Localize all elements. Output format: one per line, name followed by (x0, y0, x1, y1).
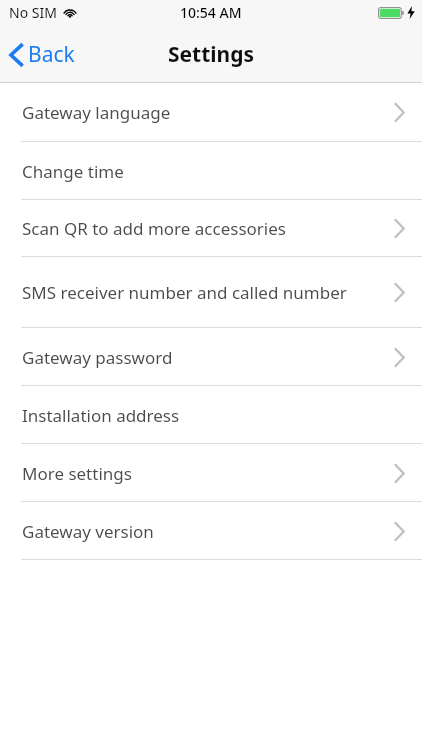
staticText: 10:54 AM (180, 3, 242, 22)
staticText: Gateway password (22, 346, 173, 369)
button[interactable]: Back (0, 34, 87, 75)
staticText: SMS receiver number and called number (22, 281, 347, 304)
button[interactable]: Installation address (0, 386, 422, 444)
button[interactable]: More settings (0, 444, 422, 502)
staticText: No SIM (9, 3, 57, 22)
staticText: Gateway language (22, 101, 171, 124)
staticText: Gateway version (22, 520, 154, 543)
staticText: Scan QR to add more accessories (22, 217, 286, 240)
button[interactable]: Change time (0, 142, 422, 200)
staticText: Installation address (22, 404, 180, 427)
staticText: Change time (22, 160, 124, 183)
staticText: More settings (22, 462, 132, 485)
button[interactable]: Gateway password (0, 328, 422, 386)
button[interactable]: Gateway language (0, 83, 422, 142)
staticText: Back (28, 40, 75, 69)
staticText: Settings (168, 40, 255, 69)
button[interactable]: Scan QR to add more accessories (0, 200, 422, 257)
button[interactable]: Gateway version (0, 502, 422, 560)
button[interactable]: SMS receiver number and called number (0, 257, 422, 328)
